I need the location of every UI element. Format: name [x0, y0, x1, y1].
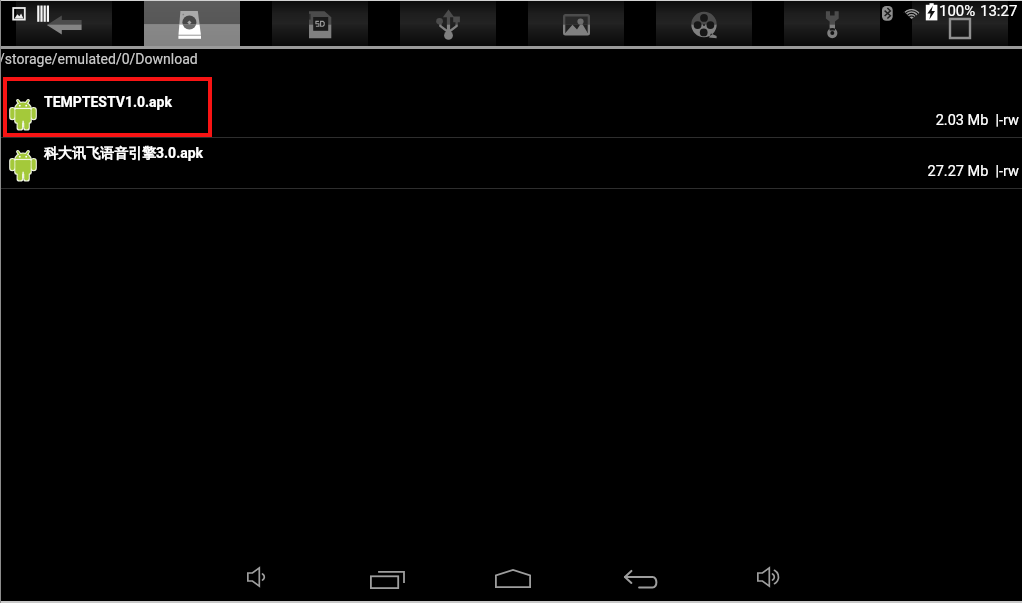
- button[interactable]: Videos: [656, 0, 752, 46]
- button[interactable]: Pictures: [528, 0, 624, 46]
- button[interactable]: TEMPTESTV1.0.apk: [0, 77, 1022, 138]
- staticText: /storage/emulated/0/Download: [0, 51, 198, 67]
- button[interactable]: Volume down: [230, 551, 282, 603]
- button[interactable]: Back: [16, 0, 112, 46]
- button[interactable]: Home: [487, 552, 539, 603]
- staticText: TEMPTESTV1.0.apk: [44, 94, 172, 110]
- button[interactable]: USB storage: [400, 0, 496, 46]
- button[interactable]: Screenshot: [912, 0, 1008, 46]
- staticText: 27.27 Mb |-rw: [0, 163, 1019, 180]
- button[interactable]: SD card: [272, 0, 368, 46]
- button[interactable]: 科大讯飞语音引擎3.0.apk: [0, 138, 1022, 189]
- button[interactable]: Recents: [361, 553, 413, 603]
- button[interactable]: Settings: [784, 0, 880, 46]
- staticText: 2.03 Mb |-rw: [0, 112, 1019, 129]
- staticText: 100%: [939, 2, 976, 20]
- staticText: 13:27: [980, 2, 1018, 20]
- button[interactable]: Back: [615, 553, 667, 603]
- button[interactable]: Volume up: [743, 551, 795, 603]
- staticText: 科大讯飞语音引擎3.0.apk: [44, 145, 204, 163]
- button[interactable]: Internal storage: [144, 0, 240, 46]
